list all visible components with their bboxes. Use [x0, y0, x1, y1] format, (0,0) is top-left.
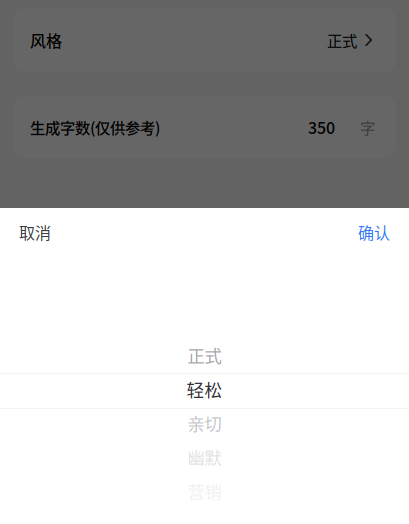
staticText: 正式 [187, 342, 221, 368]
staticText: 生成字数(仅供参考) [30, 116, 160, 138]
staticText: 确认 [358, 220, 390, 244]
staticText: 风格 [30, 28, 62, 52]
staticText: 亲切 [187, 410, 221, 436]
staticText: 营销 [187, 478, 221, 504]
button[interactable]: 轻松 [0, 372, 409, 406]
staticText: 轻松 [186, 376, 222, 402]
button[interactable]: 亲切 [0, 406, 409, 440]
staticText: 幽默 [187, 444, 221, 470]
staticText: 350 [308, 115, 335, 139]
button[interactable]: 确认 [339, 208, 409, 256]
staticText: 正式 [327, 29, 357, 51]
button[interactable]: 生成字数(仅供参考) [13, 96, 396, 158]
button[interactable]: 风格 [13, 8, 396, 72]
button[interactable]: 取消 [0, 208, 70, 256]
button[interactable]: 幽默 [0, 440, 409, 474]
staticText: 取消 [19, 220, 51, 244]
button[interactable]: 正式 [0, 338, 409, 372]
staticText: 字 [360, 116, 375, 138]
